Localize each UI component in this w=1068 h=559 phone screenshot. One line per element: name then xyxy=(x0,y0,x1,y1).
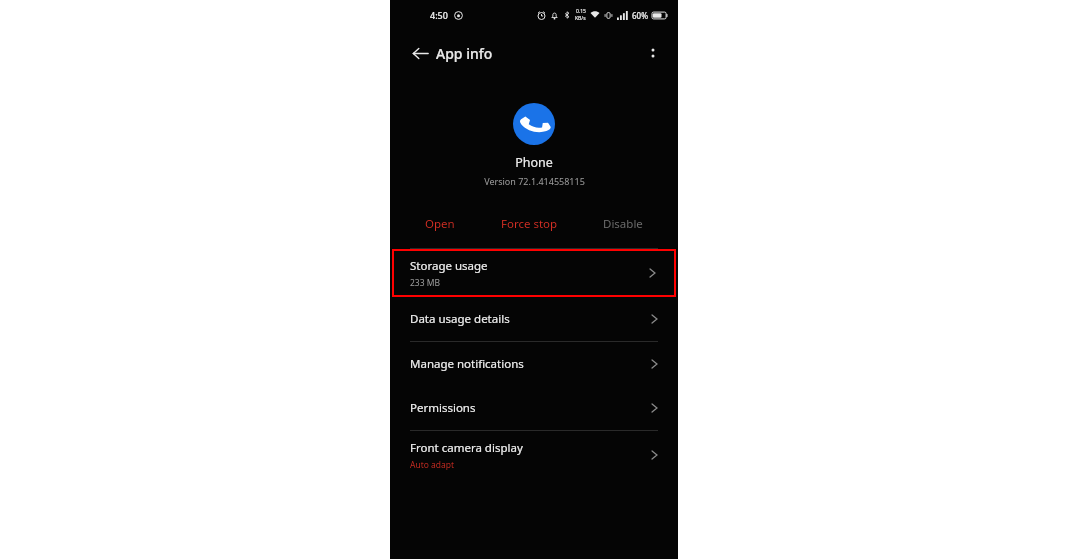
staticText: Manage notifications xyxy=(410,356,524,372)
staticText: Auto adapt xyxy=(410,459,455,471)
staticText: Disable xyxy=(603,216,643,232)
button[interactable]: Manage notifications xyxy=(390,342,678,386)
staticText: App info xyxy=(436,44,493,63)
staticText: Phone xyxy=(515,154,553,171)
button[interactable]: More options xyxy=(638,38,668,68)
button[interactable]: Data usage details xyxy=(390,297,678,341)
staticText: Open xyxy=(425,216,455,232)
button[interactable]: Back xyxy=(404,37,436,69)
staticText: Front camera display xyxy=(410,440,523,456)
staticText: 4:50 xyxy=(430,9,448,21)
staticText: 0.15 xyxy=(576,8,586,15)
staticText: Storage usage xyxy=(410,258,488,274)
staticText: 60% xyxy=(632,10,648,21)
staticText: KB/s xyxy=(575,15,586,22)
button[interactable]: Storage usage xyxy=(392,249,676,297)
staticText: Data usage details xyxy=(410,311,510,327)
button[interactable]: Front camera display xyxy=(390,431,678,479)
button[interactable]: Open xyxy=(415,209,465,239)
staticText: Version 72.1.414558115 xyxy=(484,175,585,187)
staticText: Force stop xyxy=(501,216,558,232)
staticText: 233 MB xyxy=(410,277,441,289)
button[interactable]: Force stop xyxy=(491,209,568,239)
staticText: Permissions xyxy=(410,400,476,416)
button[interactable]: Permissions xyxy=(390,386,678,430)
